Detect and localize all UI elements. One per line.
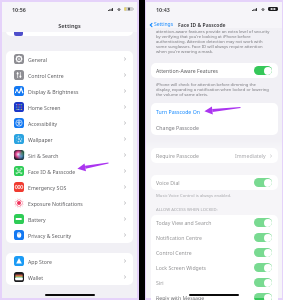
staticText: Lock Screen Widgets — [156, 264, 207, 271]
button[interactable] — [254, 233, 272, 242]
staticText: Settings — [154, 21, 174, 28]
staticText: Siri — [156, 279, 164, 286]
staticText: when you're wearing a mask. — [156, 49, 214, 54]
staticText: Turn Passcode On — [156, 108, 200, 115]
button[interactable]: Control Centre — [6, 67, 133, 83]
staticText: Reply with Message — [156, 294, 205, 300]
button[interactable]: Exposure Notifications — [6, 195, 133, 211]
staticText: Require Passcode — [156, 152, 199, 159]
button[interactable]: Reply with Message — [151, 290, 278, 300]
button[interactable]: Wallpaper — [6, 131, 133, 147]
staticText: Home Screen — [28, 104, 61, 111]
staticText: by verifying that you're looking at iPho… — [156, 34, 251, 39]
staticText: Emergency SOS — [28, 184, 67, 191]
staticText: authenticating. Attention detection may … — [156, 39, 263, 44]
button[interactable]: Battery — [6, 211, 133, 227]
button[interactable] — [254, 218, 272, 227]
staticText: Wallet — [28, 274, 44, 281]
button[interactable] — [254, 178, 272, 187]
button[interactable]: Accessibility — [6, 115, 133, 131]
staticText: attention-aware features provide an extr… — [156, 29, 270, 34]
staticText: Notification Centre — [156, 234, 202, 241]
staticText: 10:43 — [156, 6, 170, 13]
staticText: Display & Brightness — [28, 88, 79, 95]
staticText: Attention-Aware Features — [156, 67, 219, 74]
button[interactable]: Lock Screen Widgets — [151, 260, 278, 275]
staticText: 10:56 — [12, 6, 26, 13]
staticText: Immediately — [235, 152, 266, 159]
staticText: display, expanding a notification when l… — [156, 87, 269, 92]
button[interactable]: Wallet — [6, 269, 133, 285]
button[interactable] — [254, 278, 272, 287]
staticText: Today View and Search — [156, 219, 212, 226]
staticText: Change Passcode — [156, 124, 199, 131]
staticText: Privacy & Security — [28, 232, 72, 239]
staticText: Voice Dial — [156, 179, 180, 186]
button[interactable]: App Store — [6, 253, 133, 269]
button[interactable]: Turn Passcode On — [151, 103, 278, 119]
button[interactable]: Home Screen — [6, 99, 133, 115]
button[interactable]: Emergency SOS — [6, 179, 133, 195]
button[interactable] — [254, 248, 272, 257]
staticText: Music Voice Control is always enabled. — [156, 193, 232, 198]
button[interactable] — [254, 293, 272, 300]
staticText: some sunglasses. Face ID will always req… — [156, 44, 263, 49]
staticText: ALLOW ACCESS WHEN LOCKED: — [156, 207, 218, 213]
button[interactable]: Siri & Search — [6, 147, 133, 163]
button[interactable]: Privacy & Security — [6, 227, 133, 243]
button[interactable] — [254, 66, 272, 75]
staticText: Battery — [28, 216, 46, 223]
button[interactable]: Require Passcode — [151, 148, 278, 163]
staticText: the volume of same alerts. — [156, 92, 209, 97]
button[interactable]: Settings — [148, 21, 174, 28]
button[interactable]: Attention-Aware Features — [151, 63, 278, 78]
staticText: Wallpaper — [28, 136, 53, 143]
staticText: Control Centre — [28, 72, 64, 79]
button[interactable]: Face ID & Passcode — [6, 163, 133, 179]
button[interactable]: Voice Dial — [151, 175, 278, 190]
staticText: Settings — [2, 22, 137, 29]
staticText: Siri & Search — [28, 152, 59, 159]
staticText: iPhone will check for attention before d… — [156, 82, 256, 87]
staticText: General — [28, 56, 48, 63]
staticText: Control Centre — [156, 249, 192, 256]
staticText: Exposure Notifications — [28, 200, 83, 207]
button[interactable]: Control Centre — [151, 245, 278, 260]
button[interactable]: Notification Centre — [151, 230, 278, 245]
staticText: App Store — [28, 258, 52, 265]
button[interactable]: Siri — [151, 275, 278, 290]
staticText: Accessibility — [28, 120, 58, 127]
staticText: Face ID & Passcode — [28, 168, 76, 175]
button[interactable]: Today View and Search — [151, 215, 278, 230]
button[interactable]: Display & Brightness — [6, 83, 133, 99]
staticText: Face ID & Passcode — [178, 22, 226, 29]
button[interactable]: Change Passcode — [151, 119, 278, 135]
button[interactable] — [254, 263, 272, 272]
button[interactable]: General — [6, 51, 133, 67]
